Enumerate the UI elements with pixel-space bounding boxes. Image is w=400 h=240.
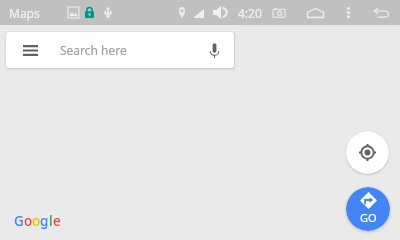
button[interactable]: Home (299, 0, 331, 25)
staticText: G (14, 212, 24, 230)
staticText: GO (360, 210, 377, 225)
staticText: l (49, 212, 53, 230)
button[interactable]: Voice search (202, 38, 226, 62)
staticText: g (40, 212, 49, 230)
button[interactable]: Back (365, 1, 397, 26)
staticText: 4:20 (238, 5, 262, 21)
button[interactable]: Menu (19, 39, 41, 61)
staticText: Maps (9, 5, 40, 21)
button[interactable]: My location (346, 131, 389, 174)
button[interactable]: GO (346, 187, 390, 231)
staticText: e (53, 212, 61, 230)
button[interactable]: More options (334, 0, 362, 25)
staticText: o (32, 212, 40, 230)
button[interactable]: Menu (6, 32, 234, 68)
staticText: Search here (60, 42, 127, 58)
staticText: o (24, 212, 32, 230)
